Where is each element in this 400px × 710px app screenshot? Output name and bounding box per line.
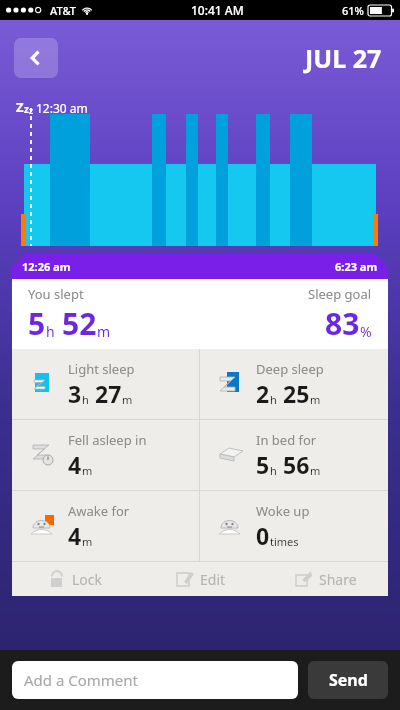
staticText: JUL 27 <box>305 41 382 75</box>
staticText: Light sleep <box>68 360 135 378</box>
staticText: AT&T <box>50 3 77 18</box>
button[interactable]: Send <box>308 661 388 699</box>
button[interactable]: Add a Comment <box>12 661 298 699</box>
staticText: 61% <box>342 3 364 18</box>
staticText: 6:23 am <box>335 259 378 274</box>
staticText: You slept <box>28 285 84 303</box>
staticText: 10:41 AM <box>191 2 244 18</box>
staticText: 5 <box>28 303 46 344</box>
button[interactable]: Woke up <box>200 491 388 561</box>
button[interactable]: Fell asleep in <box>12 420 199 490</box>
staticText: 2 <box>256 378 270 409</box>
button[interactable]: Awake for <box>12 491 199 561</box>
staticText: Edit <box>200 570 226 589</box>
staticText: Share <box>319 570 357 589</box>
staticText: Awake for <box>68 502 130 520</box>
staticText: In bed for <box>256 431 317 449</box>
button[interactable]: Back <box>14 38 58 78</box>
staticText: times <box>270 534 299 549</box>
staticText: 27 <box>95 378 122 409</box>
staticText: m <box>310 392 321 407</box>
staticText: Send <box>329 669 368 691</box>
staticText: h <box>46 322 55 341</box>
button[interactable]: Edit <box>138 562 263 596</box>
staticText: z <box>24 102 29 116</box>
button[interactable]: Lock <box>12 562 138 596</box>
staticText: 4 <box>68 520 82 551</box>
staticText: Add a Comment <box>24 670 139 690</box>
staticText: 5 <box>256 449 270 480</box>
staticText: Z <box>16 98 24 116</box>
staticText: 25 <box>283 378 310 409</box>
staticText: 52 <box>62 303 97 344</box>
staticText: z <box>29 105 33 116</box>
staticText: % <box>360 322 372 341</box>
staticText: h <box>270 463 277 478</box>
staticText: 4 <box>68 449 82 480</box>
staticText: Fell asleep in <box>68 431 147 449</box>
staticText: 0 <box>256 520 270 551</box>
staticText: m <box>82 534 93 549</box>
staticText: Woke up <box>256 502 310 520</box>
button[interactable]: Deep sleep <box>200 349 388 419</box>
staticText: m <box>97 322 111 341</box>
staticText: h <box>82 392 89 407</box>
staticText: 12:26 am <box>22 259 71 274</box>
staticText: Lock <box>72 570 103 589</box>
staticText: h <box>270 392 277 407</box>
button[interactable]: Light sleep <box>12 349 199 419</box>
button[interactable]: Share <box>263 562 388 596</box>
staticText: 83 <box>325 303 360 344</box>
staticText: 3 <box>68 378 82 409</box>
staticText: m <box>122 392 133 407</box>
staticText: 56 <box>283 449 310 480</box>
staticText: 12:30 am <box>36 100 88 116</box>
staticText: Deep sleep <box>256 360 324 378</box>
staticText: m <box>82 463 93 478</box>
button[interactable]: In bed for <box>200 420 388 490</box>
staticText: Sleep goal <box>308 285 372 303</box>
staticText: m <box>310 463 321 478</box>
